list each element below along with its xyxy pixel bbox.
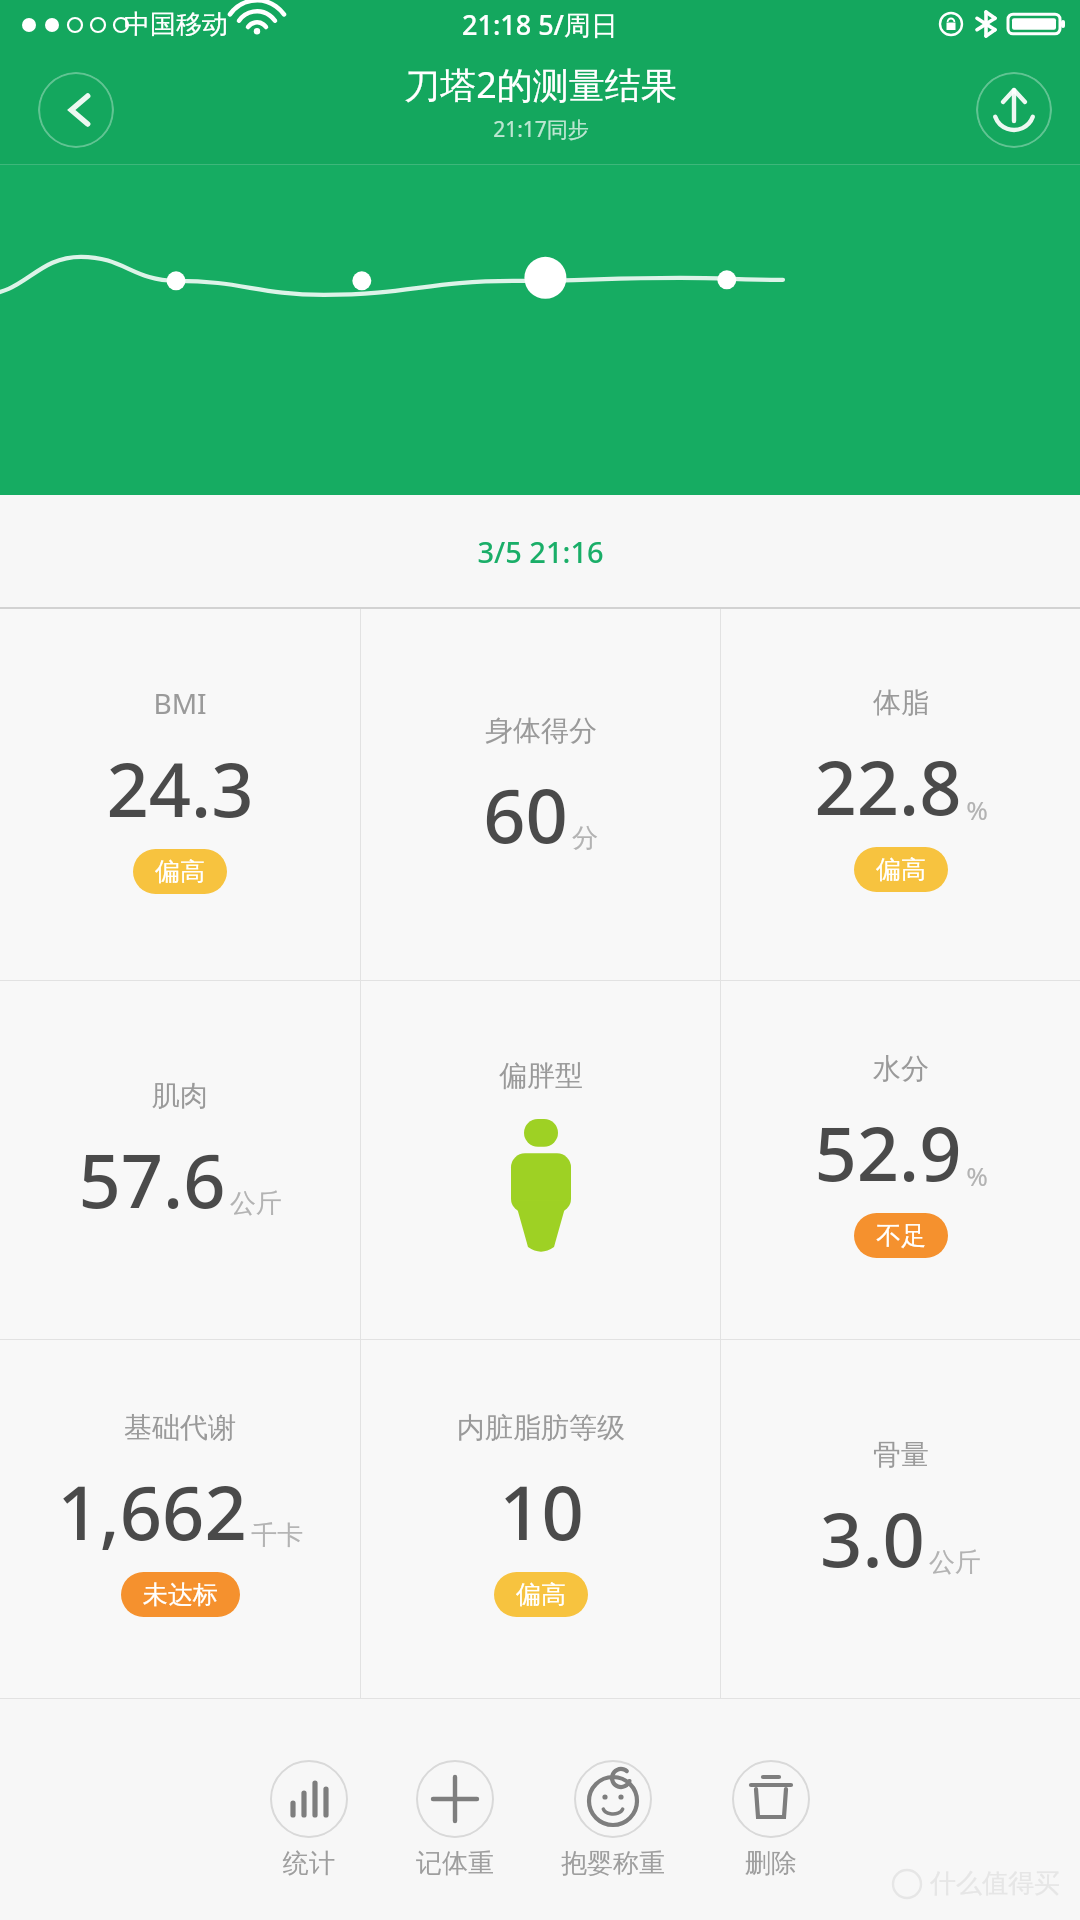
staticText: 分 xyxy=(572,822,598,855)
staticText: BMI xyxy=(153,684,207,722)
staticText: 24.3 xyxy=(106,738,254,839)
other: 统计 xyxy=(269,1759,349,1839)
other: 记体重 xyxy=(415,1759,495,1839)
staticText: 删除 xyxy=(745,1847,797,1880)
staticText: 内脏脂肪等级 xyxy=(457,1410,625,1445)
staticText: 52.9 xyxy=(814,1102,962,1203)
other: 抱婴称重 xyxy=(573,1759,653,1839)
button[interactable]: 偏胖型 xyxy=(361,981,720,1339)
button[interactable]: 身体得分 xyxy=(361,609,720,980)
staticText: 57.6 xyxy=(78,1129,226,1230)
staticText: 偏高 xyxy=(516,1579,566,1610)
staticText: 3.0 xyxy=(820,1488,925,1589)
staticText: 偏高 xyxy=(155,856,205,887)
staticText: 公斤 xyxy=(230,1187,282,1220)
staticText: 21:17同步 xyxy=(493,115,589,144)
staticText: 身体得分 xyxy=(485,713,597,748)
staticText: 21:18 5/周日 xyxy=(462,6,618,43)
other: 删除 xyxy=(731,1759,811,1839)
button[interactable]: 抱婴称重 xyxy=(555,1757,671,1882)
staticText: 千卡 xyxy=(251,1519,303,1552)
button[interactable]: 骨量 xyxy=(721,1340,1080,1698)
staticText: 60 xyxy=(483,764,568,865)
button[interactable]: 内脏脂肪等级 xyxy=(361,1340,720,1698)
button[interactable]: 偏高 xyxy=(494,1572,588,1617)
button[interactable]: 偏高 xyxy=(854,847,948,892)
button[interactable]: 基础代谢 xyxy=(0,1340,360,1698)
staticText: 刀塔2的测量结果 xyxy=(404,60,677,109)
staticText: 水分 xyxy=(873,1051,929,1086)
button[interactable]: 体脂 xyxy=(721,609,1080,980)
staticText: 基础代谢 xyxy=(124,1410,236,1445)
staticText: 公斤 xyxy=(929,1546,981,1579)
staticText: 1,662 xyxy=(57,1461,247,1562)
staticText: 偏高 xyxy=(876,854,926,885)
staticText: 中国移动 xyxy=(124,8,228,41)
staticText: % xyxy=(966,1158,988,1193)
staticText: 偏胖型 xyxy=(499,1058,583,1093)
staticText: % xyxy=(966,792,988,827)
button[interactable]: 未达标 xyxy=(121,1572,240,1617)
staticText: 22.8 xyxy=(814,736,962,837)
button[interactable]: Share xyxy=(976,72,1052,148)
staticText: 记体重 xyxy=(416,1847,494,1880)
staticText: 体脂 xyxy=(873,685,929,720)
staticText: 不足 xyxy=(876,1220,926,1251)
button[interactable]: 偏高 xyxy=(133,849,227,894)
staticText: 统计 xyxy=(283,1847,335,1880)
button[interactable]: BMI xyxy=(0,609,360,980)
button[interactable]: 删除 xyxy=(725,1757,817,1882)
button[interactable]: 水分 xyxy=(721,981,1080,1339)
button[interactable]: 肌肉 xyxy=(0,981,360,1339)
staticText: 什么值得买 xyxy=(930,1867,1060,1900)
staticText: 3/5 21:16 xyxy=(477,532,604,571)
staticText: 肌肉 xyxy=(152,1078,208,1113)
staticText: 骨量 xyxy=(873,1437,929,1472)
staticText: 未达标 xyxy=(143,1579,218,1610)
button[interactable]: Back xyxy=(38,72,114,148)
staticText: 10 xyxy=(499,1461,584,1562)
button[interactable]: 统计 xyxy=(263,1757,355,1882)
button[interactable]: 不足 xyxy=(854,1213,948,1258)
staticText: 抱婴称重 xyxy=(561,1847,665,1880)
button[interactable] xyxy=(0,165,1080,495)
button[interactable]: 记体重 xyxy=(409,1757,501,1882)
